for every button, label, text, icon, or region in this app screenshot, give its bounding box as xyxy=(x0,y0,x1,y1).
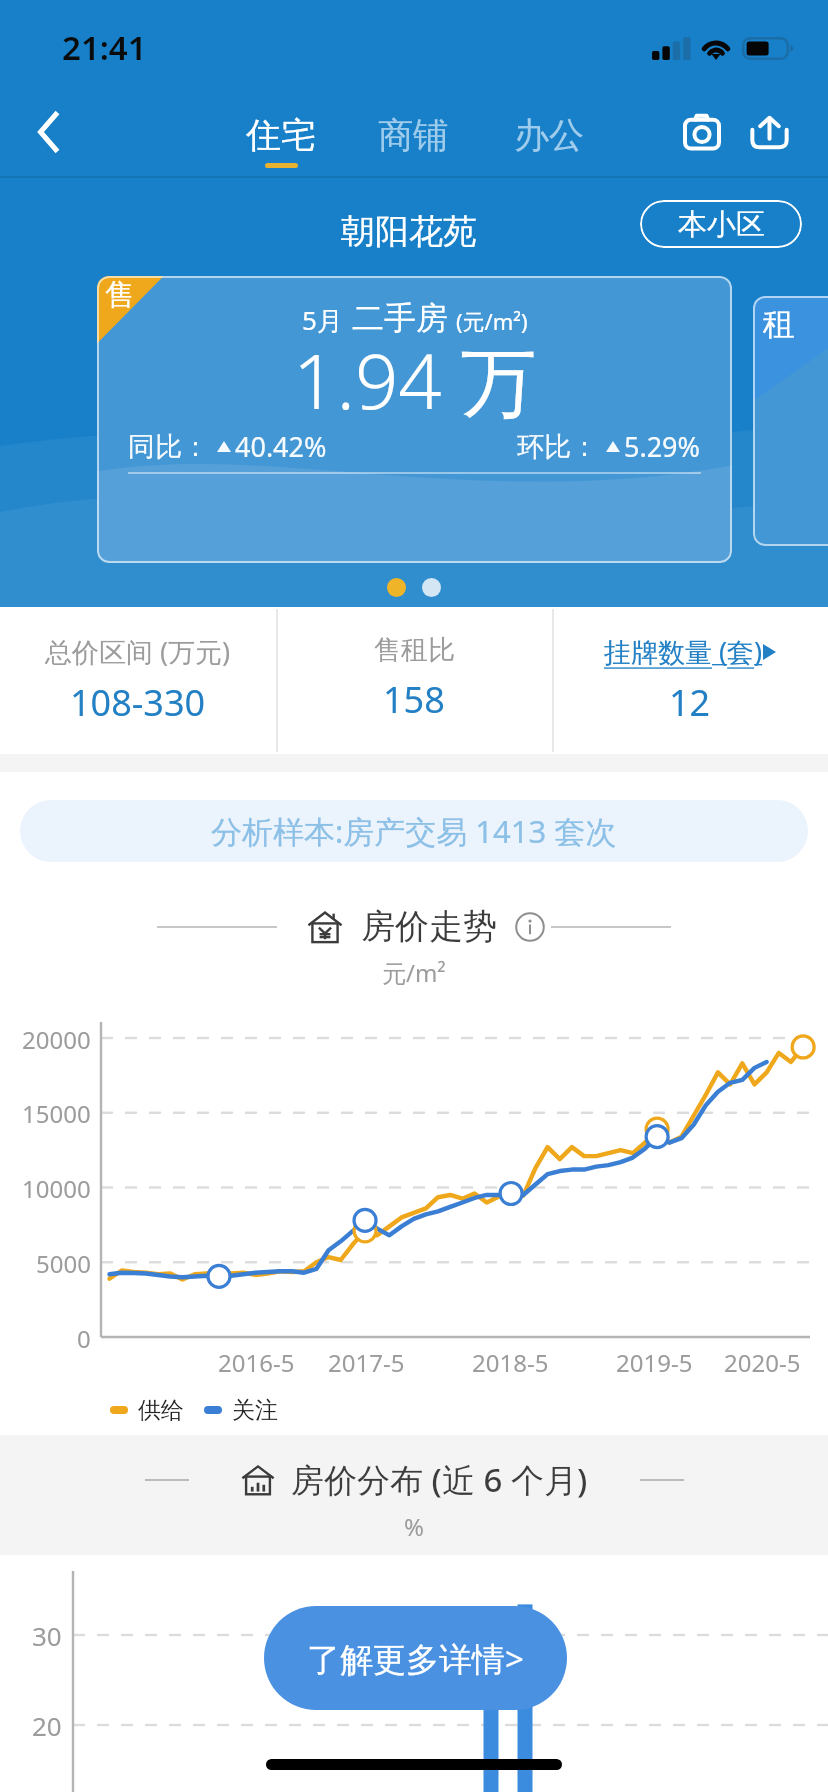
button[interactable]: Back xyxy=(11,94,87,170)
staticText: 租 xyxy=(763,304,795,344)
staticText: 总价区间 (万元) xyxy=(45,633,231,670)
staticText: 2016-5 xyxy=(218,1346,295,1379)
staticText: 20 xyxy=(32,1708,62,1743)
button[interactable]: 分析样本:房产交易 1413 套次 xyxy=(20,800,808,862)
staticText: 10000 xyxy=(22,1172,91,1205)
staticText: 售租比 xyxy=(374,633,455,667)
staticText: 了解更多详情> xyxy=(307,1636,524,1681)
staticText: 40.42% xyxy=(235,428,327,465)
staticText: 2020-5 xyxy=(724,1346,801,1379)
staticText: 房价走势 xyxy=(361,905,497,948)
staticText: 售 xyxy=(105,276,135,314)
staticText: 同比： xyxy=(128,430,209,464)
staticText: 供给 xyxy=(138,1396,184,1425)
staticText: % xyxy=(404,1510,424,1543)
staticText: 12 xyxy=(669,678,711,727)
staticText: 0 xyxy=(77,1322,91,1355)
staticText: 商铺 xyxy=(378,113,448,157)
button[interactable]: 售 xyxy=(97,276,732,563)
staticText: 元/m² xyxy=(382,956,446,989)
button[interactable]: 本小区 xyxy=(640,200,802,248)
staticText: 房价分布 (近 6 个月) xyxy=(291,1457,588,1502)
button[interactable]: 办公 xyxy=(512,107,586,174)
button[interactable]: 挂牌数量 (套) xyxy=(552,607,828,754)
staticText: 办公 xyxy=(514,113,584,157)
staticText: 5月 xyxy=(302,302,343,338)
staticText: 二手房 xyxy=(352,298,448,338)
staticText: 15000 xyxy=(22,1097,91,1130)
staticText: 2018-5 xyxy=(472,1346,549,1379)
staticText: 2017-5 xyxy=(328,1346,405,1379)
staticText: 本小区 xyxy=(678,206,765,243)
button[interactable]: 住宅 xyxy=(244,107,318,174)
button[interactable]: 售租比 xyxy=(276,607,552,754)
staticText: 朝阳花苑 xyxy=(341,210,477,253)
button[interactable]: 了解更多详情> xyxy=(264,1606,567,1710)
staticText: (元/m²) xyxy=(456,306,528,336)
staticText: 20000 xyxy=(22,1023,91,1056)
staticText: 21:41 xyxy=(62,25,147,70)
staticText: 住宅 xyxy=(246,113,316,157)
staticText: 2019-5 xyxy=(616,1346,693,1379)
button[interactable]: 总价区间 (万元) xyxy=(0,607,276,754)
staticText: 分析样本:房产交易 1413 套次 xyxy=(211,810,617,852)
button[interactable]: 商铺 xyxy=(376,107,450,174)
staticText: 关注 xyxy=(232,1396,278,1425)
button[interactable]: Camera xyxy=(663,93,741,171)
staticText: 1.94 万 xyxy=(293,328,537,432)
staticText: 108-330 xyxy=(70,678,206,727)
staticText: 30 xyxy=(32,1618,62,1653)
staticText: 5000 xyxy=(36,1247,91,1280)
staticText: 环比： xyxy=(517,430,598,464)
staticText: 158 xyxy=(383,675,445,724)
button[interactable]: 租 xyxy=(753,296,828,546)
button[interactable]: Share xyxy=(730,93,808,171)
staticText: 挂牌数量 (套) xyxy=(604,633,763,670)
staticText: 5.29% xyxy=(624,428,701,465)
